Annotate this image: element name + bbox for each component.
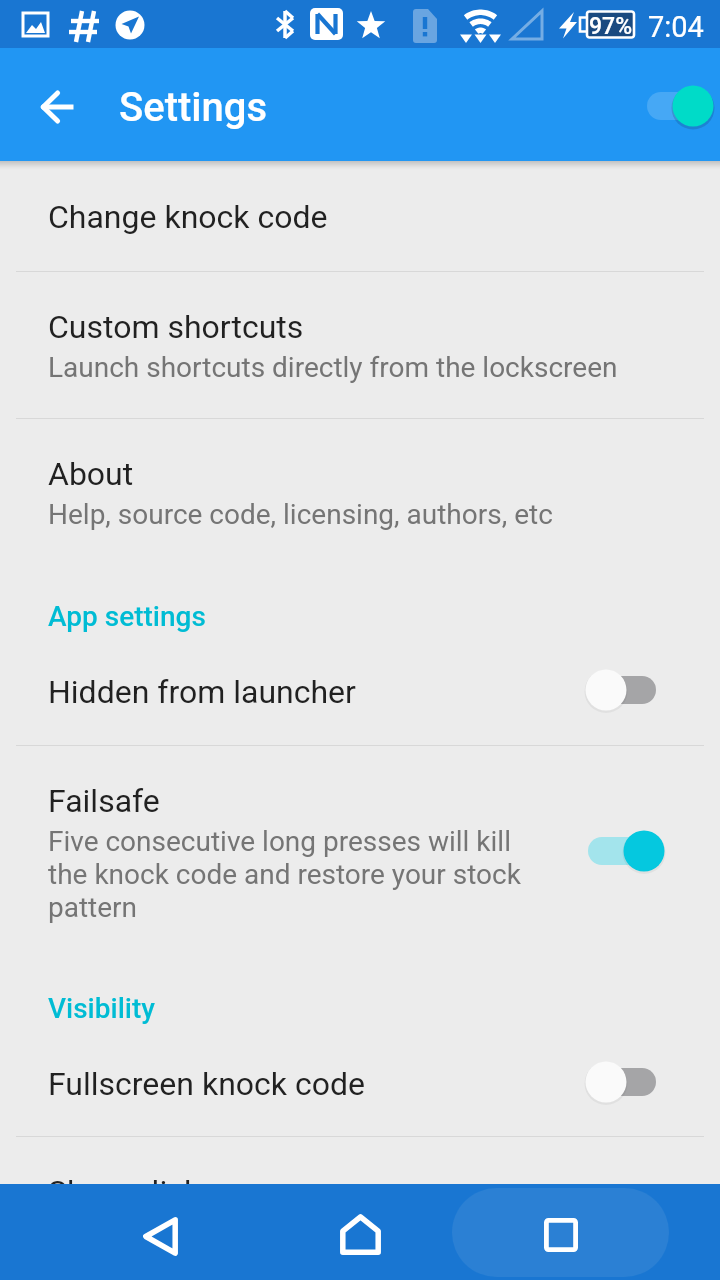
staticText: 97% [589,13,633,40]
button[interactable]: Recents [452,1188,669,1277]
staticText: Custom shortcuts [48,308,304,346]
button[interactable]: Toggle knock code [640,78,720,134]
button[interactable]: Change knock code [0,161,720,271]
button[interactable]: Home [320,1192,400,1272]
staticText: Hidden from launcher [48,673,356,711]
staticText: Change knock code [48,198,328,236]
staticText: Settings [119,84,268,131]
button[interactable]: Back [29,79,85,135]
staticText: App settings [48,600,206,633]
staticText: Five consecutive long presses will kill … [48,825,548,924]
button[interactable]: Custom shortcuts [0,272,720,418]
staticText: Show clicks [48,1173,217,1211]
staticText: Launch shortcuts directly from the locks… [48,351,618,384]
staticText: 7:04 [648,10,704,44]
button[interactable]: Back [120,1192,200,1272]
button[interactable]: Fullscreen knock code [0,1029,720,1136]
button[interactable]: About [0,419,720,565]
button[interactable]: Failsafe [0,746,720,957]
staticText: Fullscreen knock code [48,1065,365,1103]
button[interactable]: Hidden from launcher [0,637,720,745]
staticText: Help, source code, licensing, authors, e… [48,498,553,531]
button[interactable]: Show clicks [0,1137,720,1245]
staticText: Visibility [48,992,155,1025]
staticText: Failsafe [48,782,160,820]
button[interactable]: Overview [521,1196,601,1276]
staticText: About [48,455,134,493]
